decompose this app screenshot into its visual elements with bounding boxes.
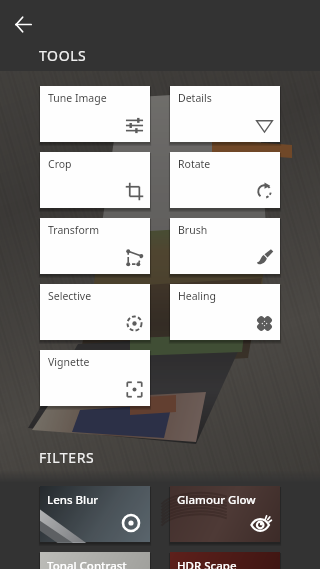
button[interactable]: Tonal Contrast <box>40 552 150 569</box>
button[interactable]: Tune Image <box>40 86 150 142</box>
staticText: Transform <box>48 223 99 237</box>
staticText: Crop <box>48 157 72 171</box>
staticText: Rotate <box>178 157 211 171</box>
button[interactable]: Selective <box>40 284 150 340</box>
button[interactable]: Back <box>7 8 39 40</box>
button[interactable]: Lens Blur <box>40 486 150 542</box>
staticText: Tune Image <box>48 91 107 105</box>
staticText: TOOLS <box>39 46 87 65</box>
staticText: FILTERS <box>39 448 95 467</box>
button[interactable]: Transform <box>40 218 150 274</box>
staticText: Tonal Contrast <box>47 558 127 569</box>
staticText: Vignette <box>48 355 90 369</box>
staticText: Details <box>178 91 212 105</box>
button[interactable]: Brush <box>170 218 280 274</box>
button[interactable]: Vignette <box>40 350 150 406</box>
button[interactable]: Rotate <box>170 152 280 208</box>
staticText: Lens Blur <box>47 492 99 508</box>
staticText: Brush <box>178 223 208 237</box>
staticText: Glamour Glow <box>177 492 256 508</box>
button[interactable]: Details <box>170 86 280 142</box>
staticText: HDR Scape <box>177 558 237 569</box>
button[interactable]: Glamour Glow <box>170 486 280 542</box>
staticText: Healing <box>178 289 216 303</box>
button[interactable]: Crop <box>40 152 150 208</box>
button[interactable]: Healing <box>170 284 280 340</box>
staticText: Selective <box>48 289 92 303</box>
button[interactable]: HDR Scape <box>170 552 280 569</box>
